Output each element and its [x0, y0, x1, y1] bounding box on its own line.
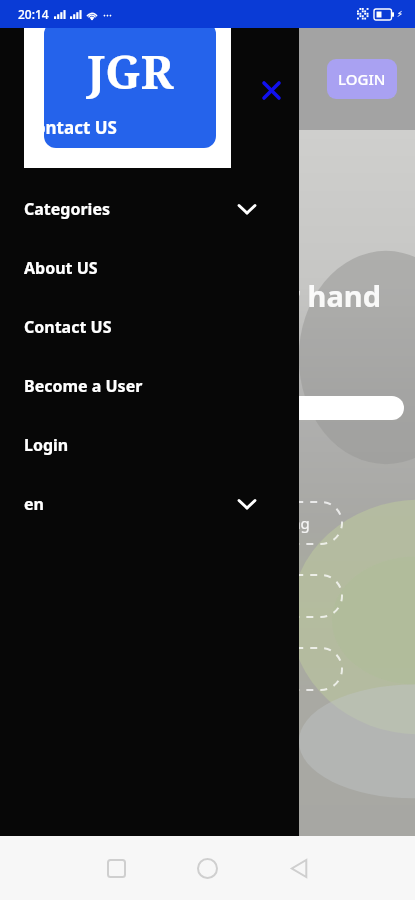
staticText: en [24, 493, 44, 515]
staticText: ⚡ [397, 10, 403, 19]
staticText: Login [24, 434, 69, 456]
button[interactable]: JGR [44, 22, 216, 148]
button[interactable] [36, 396, 404, 420]
button[interactable]: Categories [0, 189, 299, 229]
staticText: Contact US [44, 116, 117, 139]
staticText: Shopping [242, 513, 310, 533]
staticText: 20:14 [18, 6, 49, 22]
button[interactable]: Shopping [210, 502, 342, 544]
staticText: LOGIN [338, 69, 386, 89]
staticText: About US [24, 257, 98, 279]
button[interactable]: Back [280, 849, 318, 887]
button[interactable]: Close menu [255, 74, 287, 106]
button[interactable]: Food [210, 575, 342, 617]
button[interactable]: Become a User [0, 366, 299, 406]
staticText: Categories [24, 198, 110, 220]
button[interactable]: Recents [97, 849, 135, 887]
staticText: Delivered to your hand [50, 276, 381, 315]
button[interactable]: Login [0, 425, 299, 465]
staticText: JGR [87, 40, 174, 103]
button[interactable]: About US [0, 248, 299, 288]
button[interactable]: Contact US [0, 307, 299, 347]
staticText: ··· [103, 7, 112, 22]
button[interactable]: en [0, 484, 299, 524]
staticText: Become a User [24, 375, 143, 397]
button[interactable]: Home [188, 849, 226, 887]
button[interactable]: Travel [210, 648, 342, 690]
staticText: Contact US [24, 316, 112, 338]
button[interactable]: LOGIN [327, 59, 397, 99]
